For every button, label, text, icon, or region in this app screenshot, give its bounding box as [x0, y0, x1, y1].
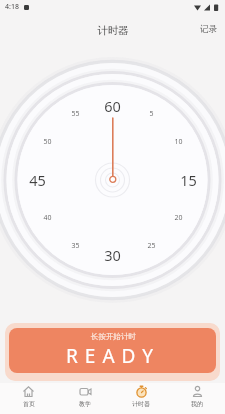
staticText: 4:18 [5, 2, 19, 12]
staticText: 30 [104, 245, 121, 265]
staticText: 15 [180, 170, 197, 190]
button[interactable]: 计时器 [113, 383, 169, 414]
staticText: 教学 [79, 400, 91, 408]
staticText: 计时器 [132, 400, 150, 408]
staticText: 50 [43, 137, 52, 147]
button[interactable]: 我的 [169, 383, 225, 414]
staticText: 5 [149, 109, 154, 119]
staticText: 长按开始计时 [91, 332, 136, 341]
staticText: 40 [43, 213, 52, 223]
button[interactable]: 教学 [57, 383, 113, 414]
button[interactable]: 长按开始计时 [9, 328, 216, 373]
staticText: 55 [71, 109, 80, 119]
staticText: 60 [104, 96, 121, 116]
staticText: 首页 [23, 400, 35, 408]
staticText: 10 [174, 137, 183, 147]
staticText: 我的 [191, 400, 203, 408]
staticText: 45 [29, 170, 46, 190]
staticText: 记录 [200, 24, 217, 35]
staticText: 20 [174, 213, 183, 223]
staticText: READY [66, 343, 160, 369]
staticText: 25 [147, 241, 156, 251]
button[interactable]: 首页 [0, 383, 57, 414]
staticText: 计时器 [97, 24, 129, 37]
staticText: 35 [71, 241, 80, 251]
button[interactable]: 记录 [200, 24, 217, 35]
